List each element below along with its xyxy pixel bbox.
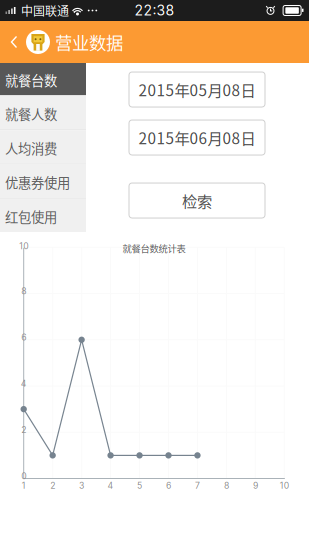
button[interactable]: 2015年05月08日 [129,72,265,107]
staticText: 红包使用 [5,207,57,226]
staticText: 5 [137,480,142,491]
button[interactable]: 优惠券使用 [0,164,86,198]
staticText: 优惠券使用 [5,172,70,192]
staticText: 就餐台数统计表 [122,241,185,255]
button[interactable]: 就餐台数 [0,63,86,95]
staticText: 2015年05月08日 [138,78,255,101]
staticText: 2 [50,480,55,491]
staticText: 4 [21,378,27,389]
staticText: 人均消费 [5,138,57,157]
button[interactable]: 2015年06月08日 [129,120,265,155]
staticText: 7 [195,480,200,491]
staticText: 2015年06月08日 [138,126,255,149]
staticText: 6 [166,480,171,491]
staticText: 就餐人数 [5,104,57,123]
button[interactable]: 人均消费 [0,130,86,163]
staticText: 10 [19,241,28,251]
staticText: 22:38 [134,2,174,19]
staticText: 8 [21,286,26,296]
staticText: 0 [21,471,26,481]
staticText: 中国联通 [21,2,69,19]
staticText: 2 [21,424,26,435]
button[interactable]: Back [2,21,26,63]
staticText: 8 [224,480,229,491]
button[interactable]: 红包使用 [0,199,86,232]
staticText: 6 [21,332,26,342]
button[interactable]: 检索 [129,183,265,218]
staticText: 就餐台数 [5,70,57,90]
staticText: 检索 [182,189,212,212]
staticText: 10 [280,480,289,491]
staticText: 4 [108,480,114,491]
staticText: 3 [79,480,84,491]
staticText: 1 [22,480,26,491]
staticText: 营业数据 [55,29,123,55]
button[interactable]: 就餐人数 [0,96,86,129]
staticText: 9 [253,480,258,491]
button[interactable]: App icon [26,30,50,54]
